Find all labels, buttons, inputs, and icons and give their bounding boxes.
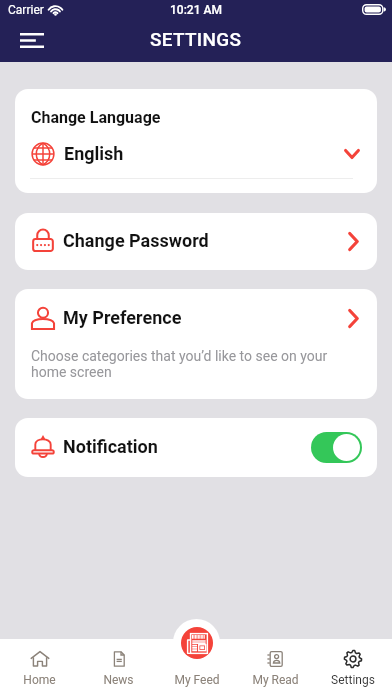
button[interactable]: Settings <box>314 639 392 696</box>
staticText: My Feed <box>174 673 220 687</box>
button[interactable]: Menu <box>10 26 50 54</box>
staticText: 10:21 AM <box>170 3 222 17</box>
button[interactable]: News <box>79 639 158 696</box>
button[interactable]: My Read <box>236 639 314 696</box>
button[interactable]: Notification toggle <box>311 432 362 463</box>
staticText: Home <box>23 673 56 687</box>
staticText: Carrier <box>8 3 44 17</box>
button[interactable]: Home <box>0 639 79 696</box>
button[interactable]: Change Language <box>15 89 377 193</box>
staticText: My Preference <box>63 307 182 328</box>
button[interactable]: Change Password <box>15 213 377 270</box>
staticText: Change Language <box>31 108 161 127</box>
button[interactable]: My Feed <box>173 619 220 666</box>
staticText: Choose categories that you’d like to see… <box>31 348 341 380</box>
button[interactable]: My Preference <box>15 289 377 399</box>
staticText: News <box>103 673 134 687</box>
staticText: Settings <box>331 673 375 687</box>
staticText: Change Password <box>63 230 209 251</box>
staticText: English <box>64 143 124 164</box>
button[interactable]: My Feed <box>158 639 236 696</box>
staticText: My Read <box>252 673 299 687</box>
staticText: Notification <box>63 436 158 457</box>
staticText: SETTINGS <box>150 28 242 50</box>
